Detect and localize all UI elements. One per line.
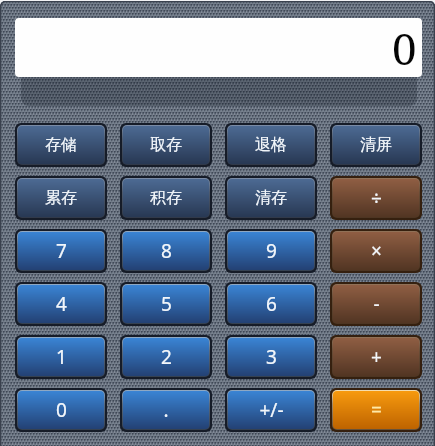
button[interactable]: = [330, 388, 422, 432]
staticText: ÷ [371, 185, 382, 211]
staticText: + [371, 344, 382, 370]
staticText: +/- [259, 397, 284, 423]
button[interactable]: 存储 [15, 123, 107, 167]
staticText: 1 [56, 344, 67, 370]
staticText: 2 [161, 344, 172, 370]
button[interactable]: 退格 [225, 123, 317, 167]
button[interactable]: 6 [225, 282, 317, 326]
staticText: 退格 [255, 135, 287, 155]
staticText: 取存 [150, 135, 182, 155]
button[interactable]: . [120, 388, 212, 432]
staticText: 9 [266, 238, 277, 264]
staticText: 清屏 [360, 135, 392, 155]
staticText: × [371, 238, 382, 264]
button[interactable]: × [330, 229, 422, 273]
staticText: 5 [161, 291, 172, 317]
button[interactable]: 0 [15, 388, 107, 432]
button[interactable]: + [330, 335, 422, 379]
button[interactable]: 8 [120, 229, 212, 273]
button[interactable]: 9 [225, 229, 317, 273]
button[interactable]: ÷ [330, 176, 422, 220]
button[interactable]: 2 [120, 335, 212, 379]
staticText: 0 [56, 397, 67, 423]
staticText: 清存 [255, 188, 287, 208]
button[interactable]: - [330, 282, 422, 326]
staticText: 7 [56, 238, 67, 264]
staticText: 8 [161, 238, 172, 264]
button[interactable]: 7 [15, 229, 107, 273]
button[interactable]: 4 [15, 282, 107, 326]
staticText: - [373, 291, 380, 317]
staticText: 6 [266, 291, 277, 317]
staticText: 4 [56, 291, 67, 317]
staticText: . [163, 397, 169, 423]
button[interactable]: 清屏 [330, 123, 422, 167]
button[interactable]: 1 [15, 335, 107, 379]
staticText: 0 [392, 18, 417, 77]
button[interactable]: 清存 [225, 176, 317, 220]
staticText: 3 [266, 344, 277, 370]
staticText: 累存 [45, 188, 77, 208]
staticText: = [371, 397, 382, 423]
button[interactable]: 累存 [15, 176, 107, 220]
button[interactable]: 积存 [120, 176, 212, 220]
button[interactable]: +/- [225, 388, 317, 432]
staticText: 积存 [150, 188, 182, 208]
staticText: 存储 [45, 135, 77, 155]
button[interactable]: 取存 [120, 123, 212, 167]
button[interactable]: 3 [225, 335, 317, 379]
button[interactable]: 5 [120, 282, 212, 326]
